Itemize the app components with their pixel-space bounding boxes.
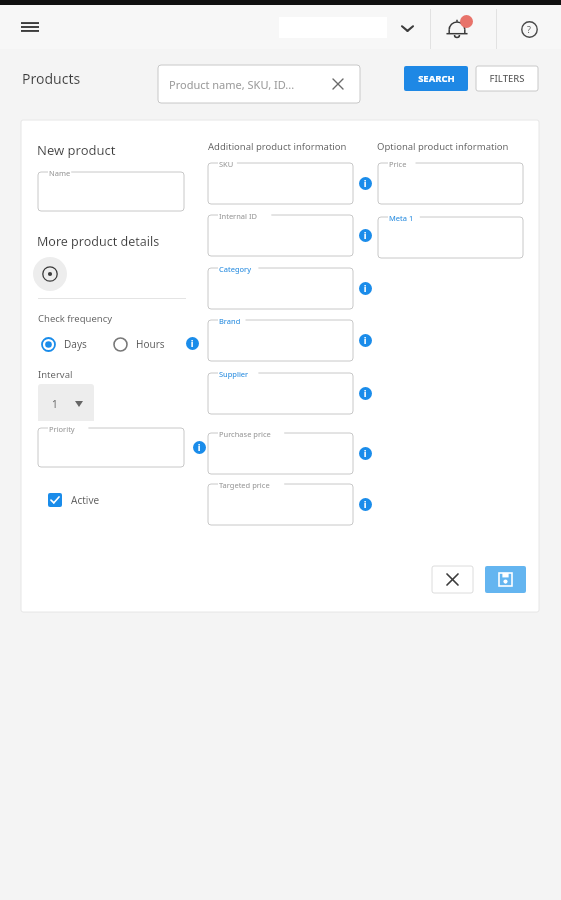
button[interactable]: Name <box>38 172 184 211</box>
button[interactable]: Hours <box>113 332 175 356</box>
button[interactable]: More information <box>359 498 372 511</box>
button[interactable]: Cancel <box>432 566 473 593</box>
button[interactable]: Notifications <box>441 13 473 45</box>
button[interactable]: More information <box>186 337 199 350</box>
button[interactable]: Expand selection <box>396 17 418 39</box>
staticText: i <box>198 442 201 453</box>
button[interactable]: More information <box>359 282 372 295</box>
staticText: Days <box>64 337 87 351</box>
staticText: i <box>364 230 367 241</box>
staticText: Interval <box>38 368 73 381</box>
button[interactable]: Priority <box>38 428 184 467</box>
button[interactable]: Menu <box>8 5 52 49</box>
button[interactable]: Product name, SKU, ID... <box>158 65 360 103</box>
staticText: Price <box>389 159 407 169</box>
staticText: i <box>364 283 367 294</box>
button[interactable]: Save <box>485 566 526 593</box>
button[interactable]: SKU <box>208 163 353 204</box>
button[interactable]: Clear search <box>326 72 350 96</box>
staticText: i <box>364 499 367 510</box>
staticText: Targeted price <box>219 480 270 490</box>
staticText: Purchase price <box>219 429 271 439</box>
staticText: Category <box>219 264 251 274</box>
staticText: Internal ID <box>219 211 257 221</box>
button[interactable]: Internal ID <box>208 215 353 256</box>
staticText: Hours <box>136 337 165 351</box>
staticText: 1 <box>52 397 58 411</box>
button[interactable]: Purchase price <box>208 433 353 474</box>
staticText: i <box>364 388 367 399</box>
staticText: FILTERS <box>489 72 525 85</box>
staticText: i <box>364 448 367 459</box>
button[interactable]: SEARCH <box>404 66 468 91</box>
button[interactable]: Meta 1 <box>378 217 523 258</box>
staticText: Additional product information <box>208 140 347 153</box>
staticText: New product <box>37 141 116 159</box>
button[interactable]: More information <box>193 441 206 454</box>
staticText: Active <box>71 493 100 507</box>
staticText: More product details <box>37 233 160 250</box>
staticText: Name <box>49 168 71 178</box>
staticText: SEARCH <box>418 72 455 85</box>
button[interactable]: Help <box>515 15 543 43</box>
staticText: i <box>364 335 367 346</box>
staticText: Check frequency <box>38 312 113 325</box>
staticText: Priority <box>49 424 75 434</box>
staticText: Products <box>22 69 81 88</box>
button[interactable]: Targeted price <box>208 484 353 525</box>
button[interactable]: Interval value <box>38 384 94 421</box>
button[interactable]: Brand <box>208 320 353 361</box>
button[interactable]: More information <box>359 229 372 242</box>
staticText: i <box>191 338 194 349</box>
button[interactable]: Expand more product details <box>33 257 67 291</box>
button[interactable]: More information <box>359 334 372 347</box>
staticText: Meta 1 <box>389 213 414 223</box>
button[interactable]: Price <box>378 163 523 204</box>
staticText: i <box>364 178 367 189</box>
button[interactable]: FILTERS <box>476 66 538 91</box>
button[interactable]: More information <box>359 387 372 400</box>
button[interactable]: More information <box>359 447 372 460</box>
staticText: ? <box>527 23 531 35</box>
button[interactable]: Supplier <box>208 373 353 414</box>
staticText: Optional product information <box>377 140 509 153</box>
button[interactable]: Active <box>48 488 118 512</box>
staticText: SKU <box>219 159 234 169</box>
button[interactable]: More information <box>359 177 372 190</box>
button[interactable]: Days <box>41 332 103 356</box>
button[interactable]: Category <box>208 268 353 309</box>
staticText: Product name, SKU, ID... <box>169 77 295 92</box>
staticText: Brand <box>219 316 241 326</box>
staticText: Supplier <box>219 369 249 379</box>
